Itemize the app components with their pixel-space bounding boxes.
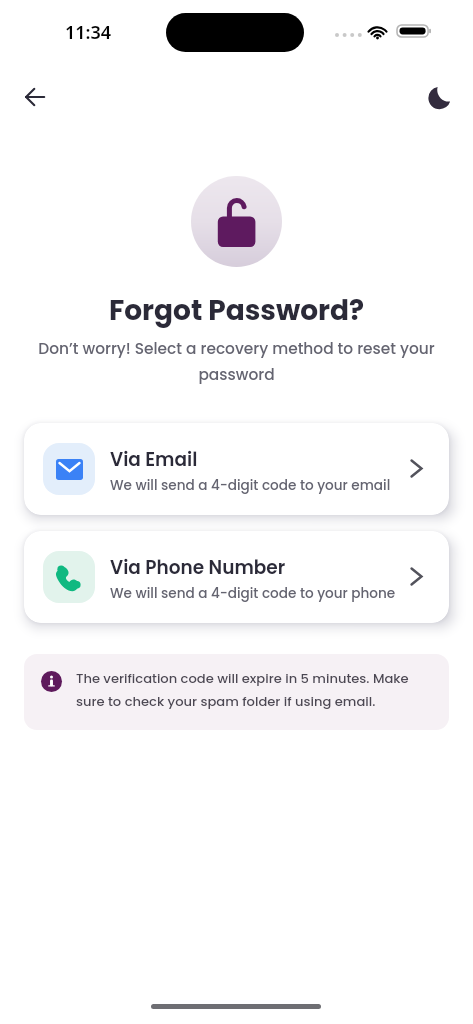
staticText: The verification code will expire in 5 m…: [76, 669, 416, 711]
button[interactable]: Via Email: [24, 423, 449, 515]
staticText: 11:34: [65, 20, 112, 45]
staticText: We will send a 4-digit code to your phon…: [110, 584, 396, 603]
button[interactable]: Dark mode: [418, 76, 462, 120]
staticText: Via Email: [110, 447, 198, 473]
staticText: Forgot Password?: [0, 291, 473, 330]
button[interactable]: Back: [12, 75, 56, 119]
staticText: Via Phone Number: [110, 555, 286, 581]
staticText: Don’t worry! Select a recovery method to…: [26, 338, 447, 385]
button[interactable]: Via Phone Number: [24, 531, 449, 623]
staticText: We will send a 4-digit code to your emai…: [110, 476, 391, 495]
